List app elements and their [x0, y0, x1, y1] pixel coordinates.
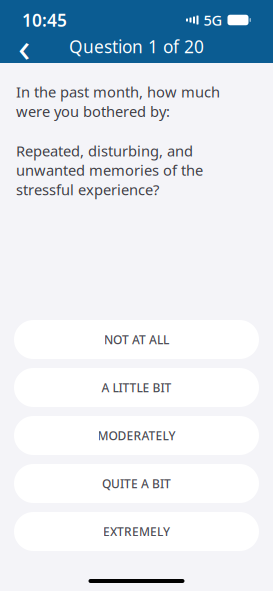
staticText: Repeated, disturbing, and unwanted memor…	[16, 141, 203, 199]
staticText: In the past month, how much were you bot…	[16, 82, 220, 121]
button[interactable]: A LITTLE BIT	[14, 368, 259, 407]
staticText: EXTREMELY	[103, 523, 170, 539]
staticText: ‹	[18, 20, 30, 73]
staticText: Question 1 of 20	[69, 35, 204, 58]
staticText: 10:45	[22, 8, 67, 31]
staticText: MODERATELY	[97, 427, 175, 443]
button[interactable]: EXTREMELY	[14, 512, 259, 551]
button[interactable]: Back	[4, 30, 44, 63]
button[interactable]: MODERATELY	[14, 416, 259, 455]
staticText: A LITTLE BIT	[101, 379, 171, 395]
staticText: QUITE A BIT	[102, 475, 171, 491]
button[interactable]: NOT AT ALL	[14, 320, 259, 359]
button[interactable]: QUITE A BIT	[14, 464, 259, 503]
staticText: 5G	[203, 10, 222, 30]
staticText: NOT AT ALL	[104, 331, 169, 347]
